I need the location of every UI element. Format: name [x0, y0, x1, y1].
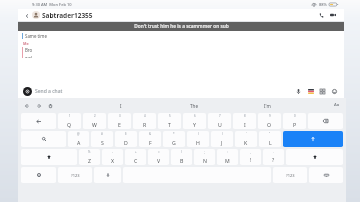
- button[interactable]: %: [79, 149, 100, 165]
- staticText: U: [218, 121, 222, 128]
- staticText: ": [269, 132, 271, 136]
- staticText: 3: [119, 114, 121, 118]
- button[interactable]: I'm: [259, 100, 275, 111]
- staticText: H: [196, 139, 200, 146]
- button[interactable]: &: [139, 131, 161, 147]
- button[interactable]: Voice message: [294, 87, 303, 96]
- button[interactable]: 5: [158, 113, 181, 129]
- staticText: =: [158, 150, 160, 154]
- staticText: 9: [269, 114, 271, 118]
- staticText: R: [143, 121, 147, 128]
- staticText: 0: [294, 114, 296, 118]
- button[interactable]: ?123: [58, 167, 92, 183]
- staticText: A: [77, 139, 81, 146]
- staticText: /: [181, 150, 183, 154]
- button[interactable]: Backspace: [308, 113, 343, 129]
- staticText: ?: [272, 157, 275, 164]
- staticText: Y: [193, 121, 196, 128]
- button[interactable]: (: [187, 131, 209, 147]
- button[interactable]: +: [125, 149, 146, 165]
- staticText: The: [190, 103, 198, 109]
- staticText: +: [135, 150, 137, 154]
- button[interactable]: ,: [240, 149, 261, 165]
- button[interactable]: Don't trust him he is a scammmer on sub: [18, 22, 344, 31]
- staticText: -: [112, 150, 113, 154]
- button[interactable]: 3: [108, 113, 131, 129]
- staticText: ?123: [286, 173, 295, 178]
- staticText: 1: [69, 114, 71, 118]
- staticText: P: [293, 121, 297, 128]
- staticText: V: [157, 157, 161, 164]
- button[interactable]: Profile: [32, 11, 40, 19]
- staticText: ': [246, 132, 247, 136]
- button[interactable]: Tab: [21, 113, 56, 129]
- button[interactable]: ': [235, 131, 257, 147]
- button[interactable]: Clipboard: [46, 101, 55, 110]
- button[interactable]: $: [115, 131, 137, 147]
- button[interactable]: 2: [83, 113, 106, 129]
- staticText: L: [269, 139, 272, 146]
- button[interactable]: Emoji: [21, 167, 56, 183]
- button[interactable]: The: [186, 100, 202, 111]
- button[interactable]: ): [211, 131, 233, 147]
- button[interactable]: 4: [133, 113, 156, 129]
- button[interactable]: 8: [233, 113, 256, 129]
- button[interactable]: Voice input: [94, 167, 121, 183]
- button[interactable]: 1: [58, 113, 81, 129]
- staticText: I: [244, 121, 246, 128]
- staticText: O: [267, 121, 272, 128]
- button[interactable]: Back: [22, 11, 31, 20]
- staticText: ;: [204, 150, 205, 154]
- button[interactable]: Video call: [328, 10, 338, 20]
- button[interactable]: 9: [258, 113, 281, 129]
- button[interactable]: @: [68, 131, 89, 147]
- staticText: ?123: [71, 173, 80, 178]
- staticText: Sabtrader12355: [42, 11, 93, 20]
- button[interactable]: 0: [283, 113, 306, 129]
- staticText: Send a chat: [35, 88, 63, 95]
- button[interactable]: Search: [21, 131, 66, 147]
- button[interactable]: #: [91, 131, 113, 147]
- staticText: $: [125, 132, 127, 136]
- staticText: T: [168, 121, 171, 128]
- button[interactable]: Stickers: [306, 87, 315, 96]
- button[interactable]: 6: [183, 113, 206, 129]
- staticText: X: [111, 157, 115, 164]
- button[interactable]: Text settings: [332, 100, 342, 110]
- button[interactable]: Shift: [286, 149, 343, 165]
- staticText: W: [92, 121, 97, 128]
- button[interactable]: I: [113, 100, 129, 111]
- staticText: @: [77, 132, 80, 136]
- button[interactable]: -: [102, 149, 123, 165]
- staticText: N: [203, 157, 207, 164]
- staticText: 9:30 AM Mon Feb 10: [32, 2, 72, 7]
- button[interactable]: =: [148, 149, 169, 165]
- button[interactable]: .: [263, 149, 284, 165]
- button[interactable]: /: [171, 149, 192, 165]
- button[interactable]: ": [259, 131, 281, 147]
- staticText: *: [173, 132, 175, 136]
- staticText: 8: [244, 114, 246, 118]
- staticText: 2: [94, 114, 96, 118]
- button[interactable]: 7: [208, 113, 231, 129]
- staticText: 5: [169, 114, 171, 118]
- staticText: S: [101, 139, 104, 146]
- button[interactable]: Shift: [21, 149, 77, 165]
- staticText: .: [273, 150, 274, 154]
- button[interactable]: ?123: [273, 167, 307, 183]
- staticText: #: [101, 132, 103, 136]
- button[interactable]: Voice call: [316, 10, 326, 20]
- button[interactable]: Redo: [34, 101, 43, 110]
- button[interactable]: Camera: [23, 87, 32, 96]
- button[interactable]: Emoji: [330, 87, 339, 96]
- button[interactable]: Enter: [283, 131, 343, 147]
- button[interactable]: ;: [194, 149, 215, 165]
- button[interactable]: Gallery: [318, 87, 327, 96]
- button[interactable]: *: [163, 131, 185, 147]
- staticText: I'm: [264, 103, 271, 109]
- button[interactable]: Hide keyboard: [309, 167, 343, 183]
- button[interactable]: Undo: [22, 101, 31, 110]
- button[interactable]: :: [217, 149, 238, 165]
- staticText: 4: [144, 114, 146, 118]
